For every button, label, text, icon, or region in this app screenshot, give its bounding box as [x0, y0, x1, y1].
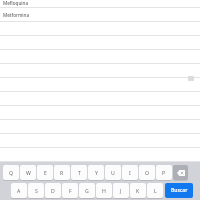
button[interactable]	[0, 36, 200, 50]
staticText: Q	[9, 169, 14, 176]
staticText: Y	[95, 169, 98, 176]
staticText: T	[78, 169, 81, 176]
button[interactable]: F	[62, 183, 78, 198]
button[interactable]	[0, 162, 200, 176]
button[interactable]: D	[45, 183, 61, 198]
staticText: L	[154, 187, 157, 194]
button[interactable]: S	[28, 183, 44, 198]
button[interactable]	[0, 106, 200, 120]
other: Scroll indicator	[188, 76, 194, 81]
button[interactable]: E	[37, 165, 53, 180]
staticText: P	[162, 169, 166, 176]
staticText: G	[85, 187, 89, 194]
button[interactable]: G	[79, 183, 95, 198]
button[interactable]: J	[113, 183, 129, 198]
button[interactable]: P	[156, 165, 172, 180]
button[interactable]: W	[20, 165, 36, 180]
staticText: U	[111, 169, 115, 176]
button[interactable]: Mefloquina	[0, 0, 200, 8]
staticText: D	[51, 187, 55, 194]
staticText: W	[26, 169, 31, 176]
staticText: Mefloquina	[3, 0, 29, 6]
button[interactable]: A	[11, 183, 27, 198]
button[interactable]	[0, 120, 200, 134]
button[interactable]	[0, 134, 200, 148]
button[interactable]	[0, 92, 200, 106]
staticText: I	[129, 169, 131, 176]
button[interactable]: L	[147, 183, 163, 198]
staticText: K	[136, 187, 140, 194]
button[interactable]: O	[139, 165, 155, 180]
button[interactable]: T	[71, 165, 87, 180]
button[interactable]: U	[105, 165, 121, 180]
button[interactable]	[0, 64, 200, 78]
button[interactable]: H	[96, 183, 112, 198]
staticText: F	[69, 187, 72, 194]
staticText: E	[44, 169, 47, 176]
staticText: A	[17, 187, 21, 194]
button[interactable]: Y	[88, 165, 104, 180]
button[interactable]: Metformina	[0, 8, 200, 22]
button[interactable]: Backspace	[173, 165, 188, 180]
staticText: Metformina	[3, 12, 30, 18]
button[interactable]	[0, 22, 200, 36]
button[interactable]	[0, 148, 200, 162]
staticText: Buscar	[171, 187, 188, 194]
staticText: S	[35, 187, 38, 194]
staticText: O	[145, 169, 150, 176]
button[interactable]: Q	[3, 165, 19, 180]
button[interactable]	[0, 50, 200, 64]
button[interactable]: Buscar	[165, 183, 193, 198]
staticText: J	[120, 187, 122, 194]
staticText: R	[60, 169, 64, 176]
button[interactable]: I	[122, 165, 138, 180]
button[interactable]	[0, 78, 200, 92]
button[interactable]: R	[54, 165, 70, 180]
button[interactable]: K	[130, 183, 146, 198]
staticText: H	[102, 187, 106, 194]
